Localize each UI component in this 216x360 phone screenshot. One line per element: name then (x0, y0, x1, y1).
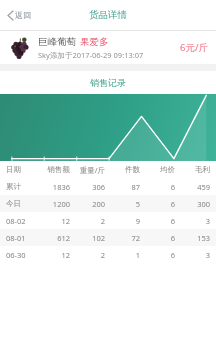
staticText: 件数 (105, 165, 140, 174)
button[interactable]: 今日 (0, 195, 216, 212)
staticText: 5 (105, 199, 140, 209)
staticText: 6 (140, 182, 175, 192)
staticText: 货品详情 (89, 9, 127, 21)
staticText: 459 (175, 182, 210, 192)
staticText: 3 (175, 216, 210, 226)
staticText: 87 (105, 182, 140, 192)
staticText: 6元/斤 (180, 41, 208, 54)
staticText: 300 (175, 199, 210, 209)
button[interactable]: 08-01 (0, 229, 216, 246)
staticText: 日期 (6, 165, 36, 174)
staticText: 今日 (6, 199, 36, 208)
button[interactable]: 巨峰葡萄 (0, 31, 216, 64)
staticText: 1836 (36, 182, 70, 192)
staticText: 6 (140, 233, 175, 243)
staticText: 巨峰葡萄 (38, 36, 76, 48)
staticText: 612 (36, 233, 70, 243)
staticText: 销售记录 (90, 77, 126, 88)
staticText: 102 (70, 233, 105, 243)
staticText: 6 (140, 216, 175, 226)
staticText: 果爱多 (80, 36, 109, 48)
staticText: 153 (175, 233, 210, 243)
staticText: Sky添加于2017-06-29 09:13:07 (38, 50, 144, 60)
staticText: 08-01 (6, 233, 36, 243)
staticText: 72 (105, 233, 140, 243)
button[interactable]: 返回 (5, 6, 34, 24)
staticText: 9 (105, 216, 140, 226)
button[interactable]: 06-30 (0, 246, 216, 263)
button[interactable]: 累计 (0, 178, 216, 195)
staticText: 均价 (140, 165, 175, 174)
staticText: 06-30 (6, 250, 36, 260)
staticText: 销售额 (36, 165, 70, 174)
staticText: 6 (140, 199, 175, 209)
button[interactable]: 08-02 (0, 212, 216, 229)
staticText: 2 (70, 250, 105, 260)
staticText: 毛利 (175, 165, 210, 174)
staticText: 3 (175, 250, 210, 260)
staticText: 12 (36, 250, 70, 260)
staticText: 200 (70, 199, 105, 209)
staticText: 1 (105, 250, 140, 260)
staticText: 返回 (15, 10, 31, 20)
staticText: 累计 (6, 182, 36, 191)
staticText: 2 (70, 216, 105, 226)
staticText: 6 (140, 250, 175, 260)
staticText: 08-02 (6, 216, 36, 226)
staticText: 重量/斤 (70, 165, 105, 175)
staticText: 306 (70, 182, 105, 192)
staticText: 12 (36, 216, 70, 226)
staticText: 1200 (36, 199, 70, 209)
